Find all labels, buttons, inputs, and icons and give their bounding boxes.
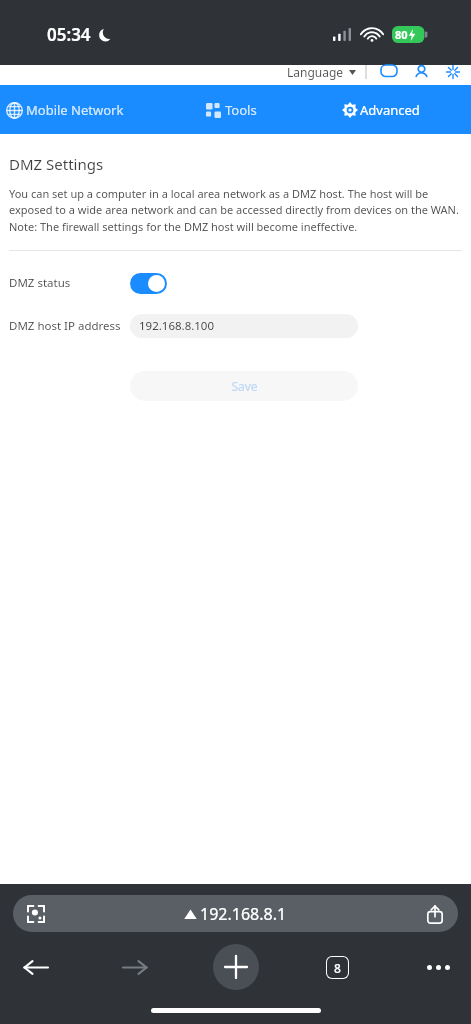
staticText: You can set up a computer in a local are… (9, 186, 462, 235)
staticText: DMZ Settings (9, 154, 104, 174)
button[interactable]: 192.168.8.100 (130, 314, 358, 338)
button[interactable]: Share (424, 903, 446, 925)
staticText: DMZ status (9, 275, 130, 291)
button[interactable]: Tools (196, 93, 267, 127)
button[interactable]: Mobile Network (0, 93, 134, 127)
other: Scan with camera (26, 904, 46, 924)
button[interactable]: Save (130, 371, 358, 401)
staticText: Tools (225, 101, 257, 119)
staticText: 80 (395, 27, 408, 42)
staticText: DMZ host IP address (9, 318, 130, 334)
staticText: 8 (334, 960, 341, 976)
button[interactable]: Advanced (332, 93, 471, 127)
staticText: Advanced (360, 101, 420, 119)
button[interactable]: Forward (112, 944, 158, 990)
button[interactable]: Tabs, 8 open (314, 944, 360, 990)
staticText: Language (287, 64, 344, 80)
staticText: 05:34 (47, 23, 91, 46)
button[interactable]: Refresh (443, 62, 463, 82)
button[interactable]: Scan with camera (13, 895, 458, 932)
staticText: 192.168.8.1 (200, 903, 287, 925)
staticText: Mobile Network (26, 101, 124, 119)
button[interactable]: Back (12, 944, 58, 990)
button[interactable]: Account (411, 62, 431, 82)
button[interactable]: Support chat (379, 62, 399, 82)
staticText: 192.168.8.100 (139, 318, 215, 334)
button[interactable]: Language (285, 64, 346, 80)
staticText: Save (231, 378, 258, 394)
button[interactable]: New tab (213, 944, 259, 990)
button[interactable]: DMZ status toggle, on (130, 273, 167, 294)
button[interactable]: More options (415, 944, 461, 990)
